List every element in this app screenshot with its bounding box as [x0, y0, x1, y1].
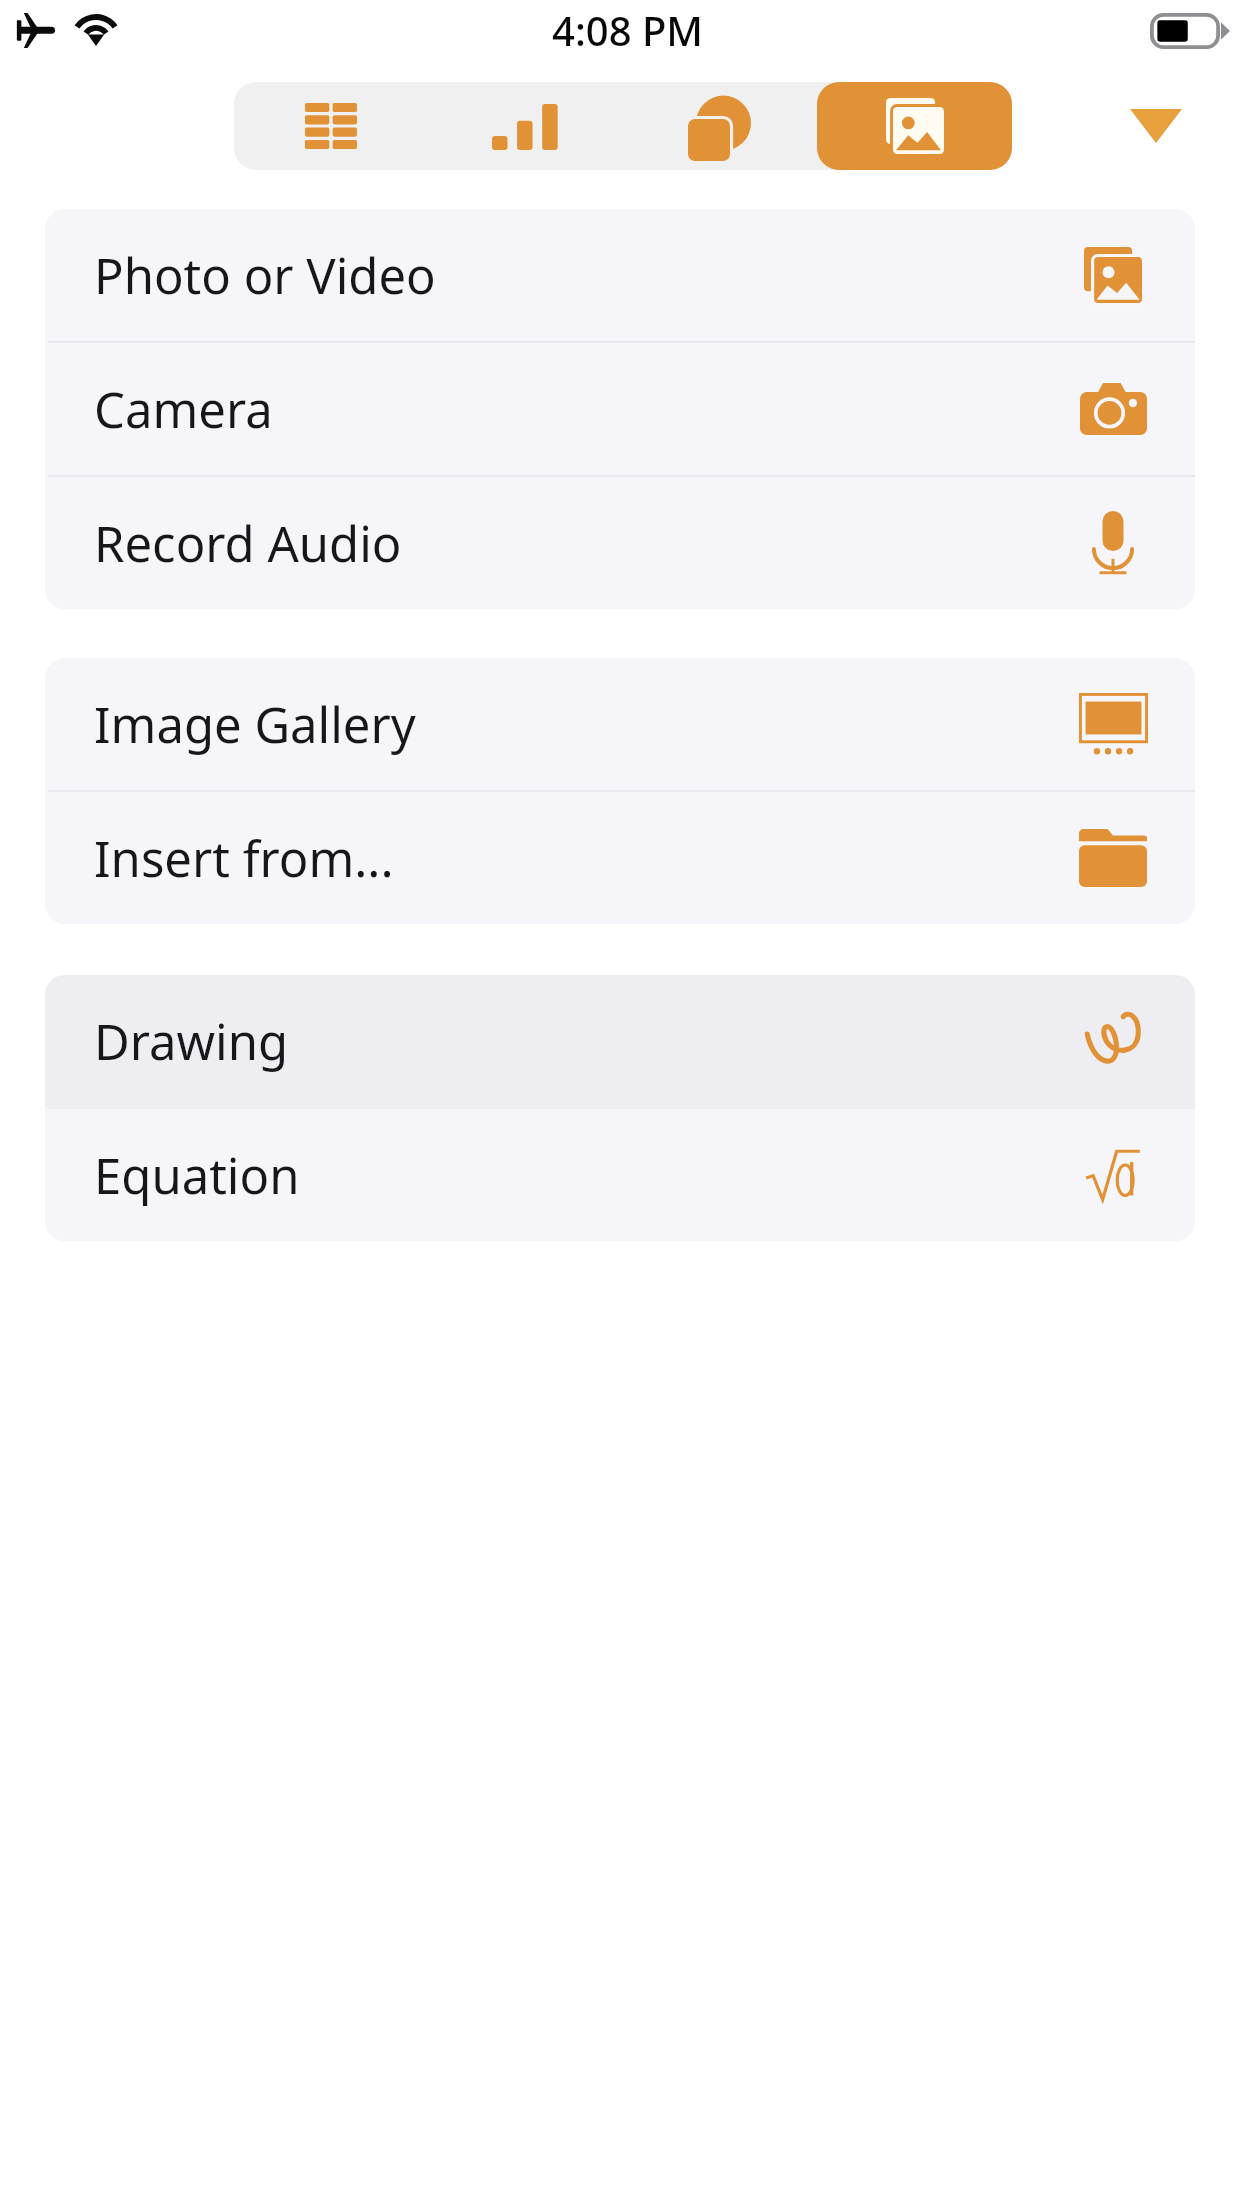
staticText: Drawing	[94, 1008, 289, 1075]
button[interactable]: Photo or Video	[45, 209, 1195, 341]
staticText: 4:08 PM	[552, 3, 704, 57]
button[interactable]: Collapse ribbon	[1112, 96, 1200, 156]
staticText: Image Gallery	[94, 691, 416, 758]
button[interactable]: Camera	[45, 343, 1195, 475]
button[interactable]: Chart	[428, 82, 622, 170]
staticText: Insert from...	[94, 825, 394, 892]
staticText: Camera	[94, 376, 273, 443]
button[interactable]: Record Audio	[45, 477, 1195, 609]
button[interactable]: Shape	[622, 82, 817, 170]
button[interactable]: Insert from...	[45, 792, 1195, 924]
button[interactable]: Image Gallery	[45, 658, 1195, 790]
staticText: Equation	[94, 1142, 300, 1209]
staticText: Photo or Video	[94, 242, 436, 309]
button[interactable]: Drawing	[45, 975, 1195, 1107]
button[interactable]: Table	[234, 82, 428, 170]
button[interactable]: Media	[817, 82, 1012, 170]
staticText: Record Audio	[94, 510, 402, 577]
button[interactable]: Equation	[45, 1109, 1195, 1241]
